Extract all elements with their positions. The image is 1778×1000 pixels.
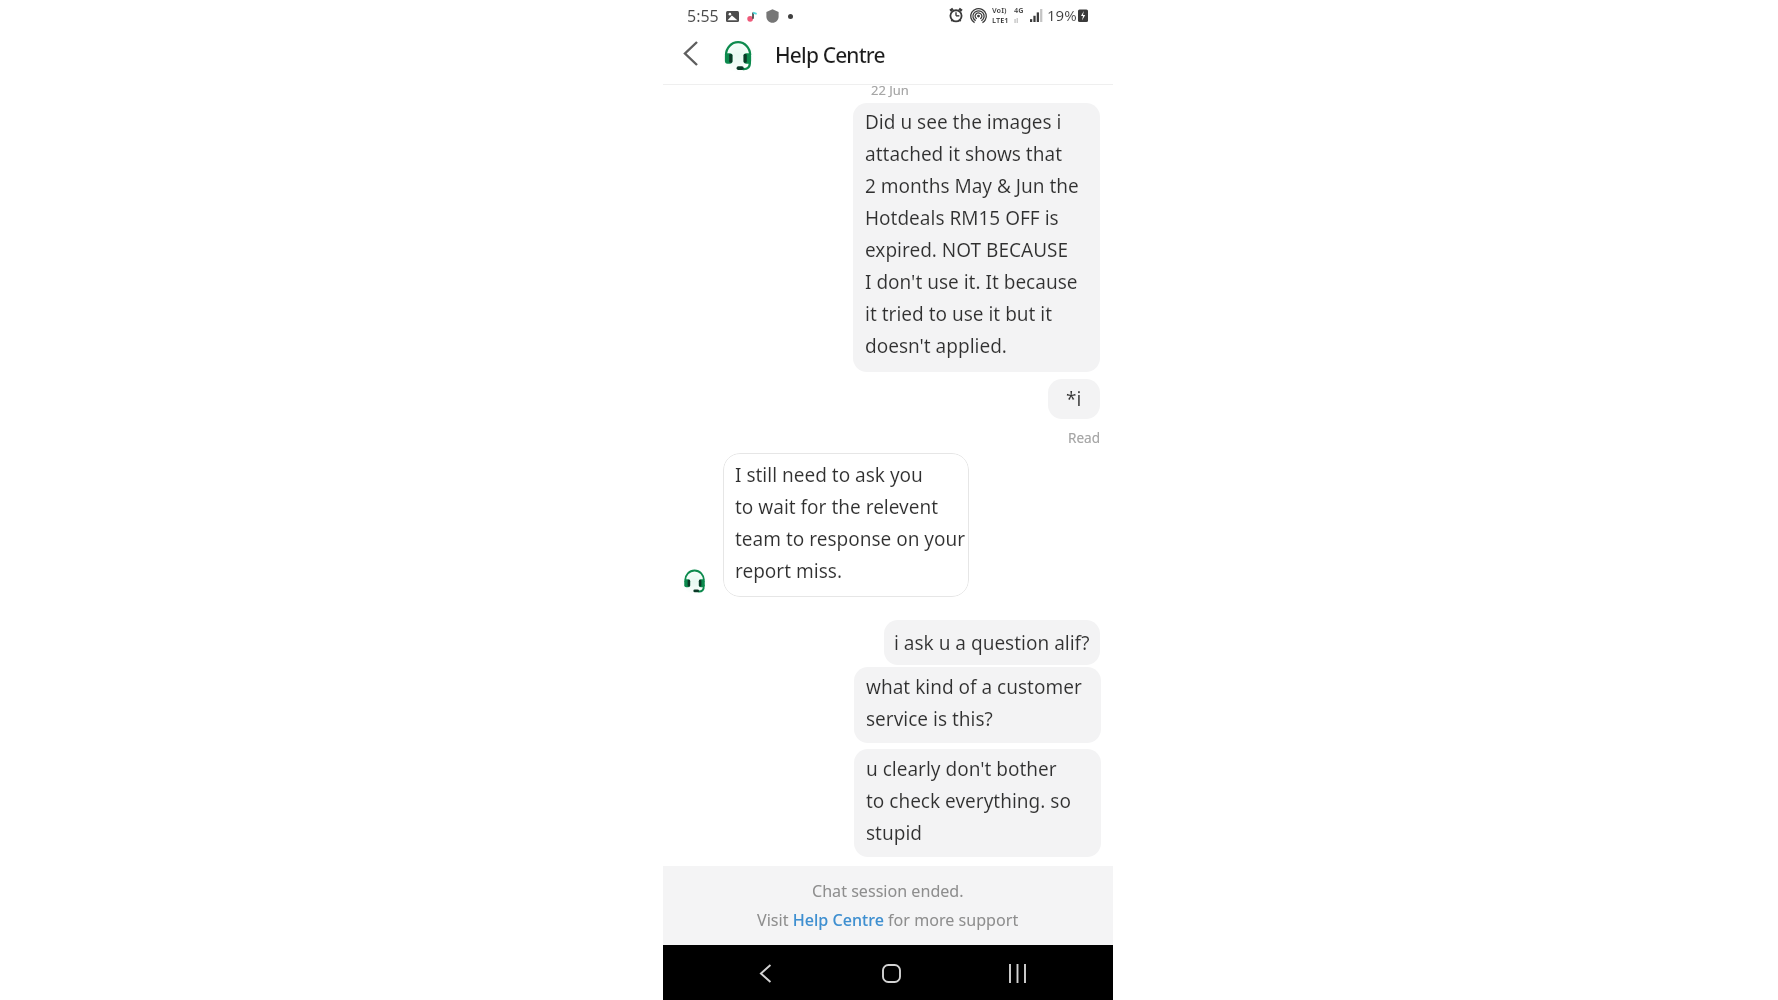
staticText: u clearly don't bother to check everythi… (866, 756, 1071, 846)
button[interactable]: u clearly don't bother to check everythi… (854, 749, 1101, 857)
button[interactable]: I still need to ask you to wait for the … (723, 453, 969, 597)
staticText: 22 Jun (871, 81, 909, 99)
button[interactable]: what kind of a customer service is this? (854, 667, 1101, 743)
staticText: ıl (1014, 15, 1019, 25)
staticText: Read (1068, 428, 1101, 447)
button[interactable]: Home (866, 948, 916, 998)
button[interactable]: i ask u a question alif? (884, 620, 1100, 665)
staticText: Chat session ended. (812, 880, 964, 902)
staticText: VoI) (992, 5, 1007, 15)
button[interactable]: Help Centre (715, 32, 905, 82)
button[interactable]: Back (674, 36, 708, 70)
staticText: 4G (1014, 5, 1024, 15)
staticText: what kind of a customer service is this? (866, 674, 1082, 732)
button[interactable]: Recent apps (992, 948, 1042, 998)
button[interactable]: Visit Help Centre for more support (757, 909, 1019, 931)
staticText: I still need to ask you to wait for the … (735, 462, 966, 584)
staticText: i ask u a question alif? (894, 630, 1090, 656)
button[interactable]: Did u see the images i attached it shows… (853, 103, 1100, 372)
staticText: Did u see the images i attached it shows… (865, 109, 1079, 359)
staticText: Visit Help Centre for more support (757, 909, 1019, 931)
button[interactable]: *i (1048, 379, 1100, 419)
staticText: *i (1066, 386, 1082, 412)
staticText: 5:55 (687, 5, 719, 27)
staticText: LTE1 (992, 15, 1009, 25)
staticText: 19% (1047, 5, 1077, 25)
staticText: Help Centre (775, 41, 885, 70)
button[interactable]: Back (740, 948, 790, 998)
